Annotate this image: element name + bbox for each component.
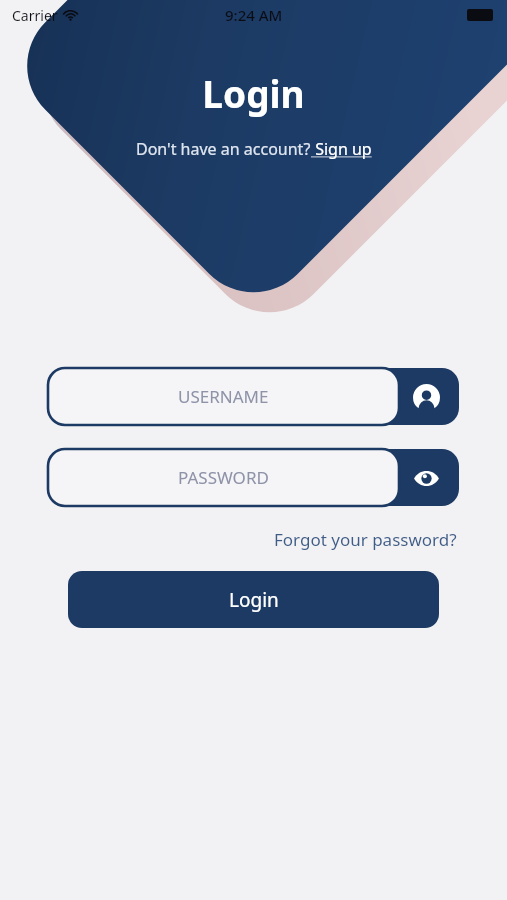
- staticText: Forgot your password?: [274, 528, 457, 551]
- other: Show password: [411, 463, 441, 493]
- staticText: 9:24 AM: [225, 5, 283, 25]
- staticText: PASSWORD: [178, 466, 269, 489]
- staticText: Carrier: [12, 6, 58, 25]
- button[interactable]: Don't have an account?: [132, 136, 376, 162]
- staticText: Login: [202, 68, 305, 118]
- button[interactable]: PASSWORD: [48, 449, 459, 506]
- button[interactable]: USERNAME: [48, 368, 459, 425]
- button[interactable]: Login: [68, 571, 439, 628]
- staticText: Sign up: [311, 138, 372, 160]
- button[interactable]: Forgot your password?: [48, 522, 459, 557]
- staticText: USERNAME: [178, 385, 269, 408]
- other: Username: [411, 382, 441, 412]
- staticText: Login: [229, 587, 279, 613]
- staticText: Don't have an account?: [136, 138, 311, 160]
